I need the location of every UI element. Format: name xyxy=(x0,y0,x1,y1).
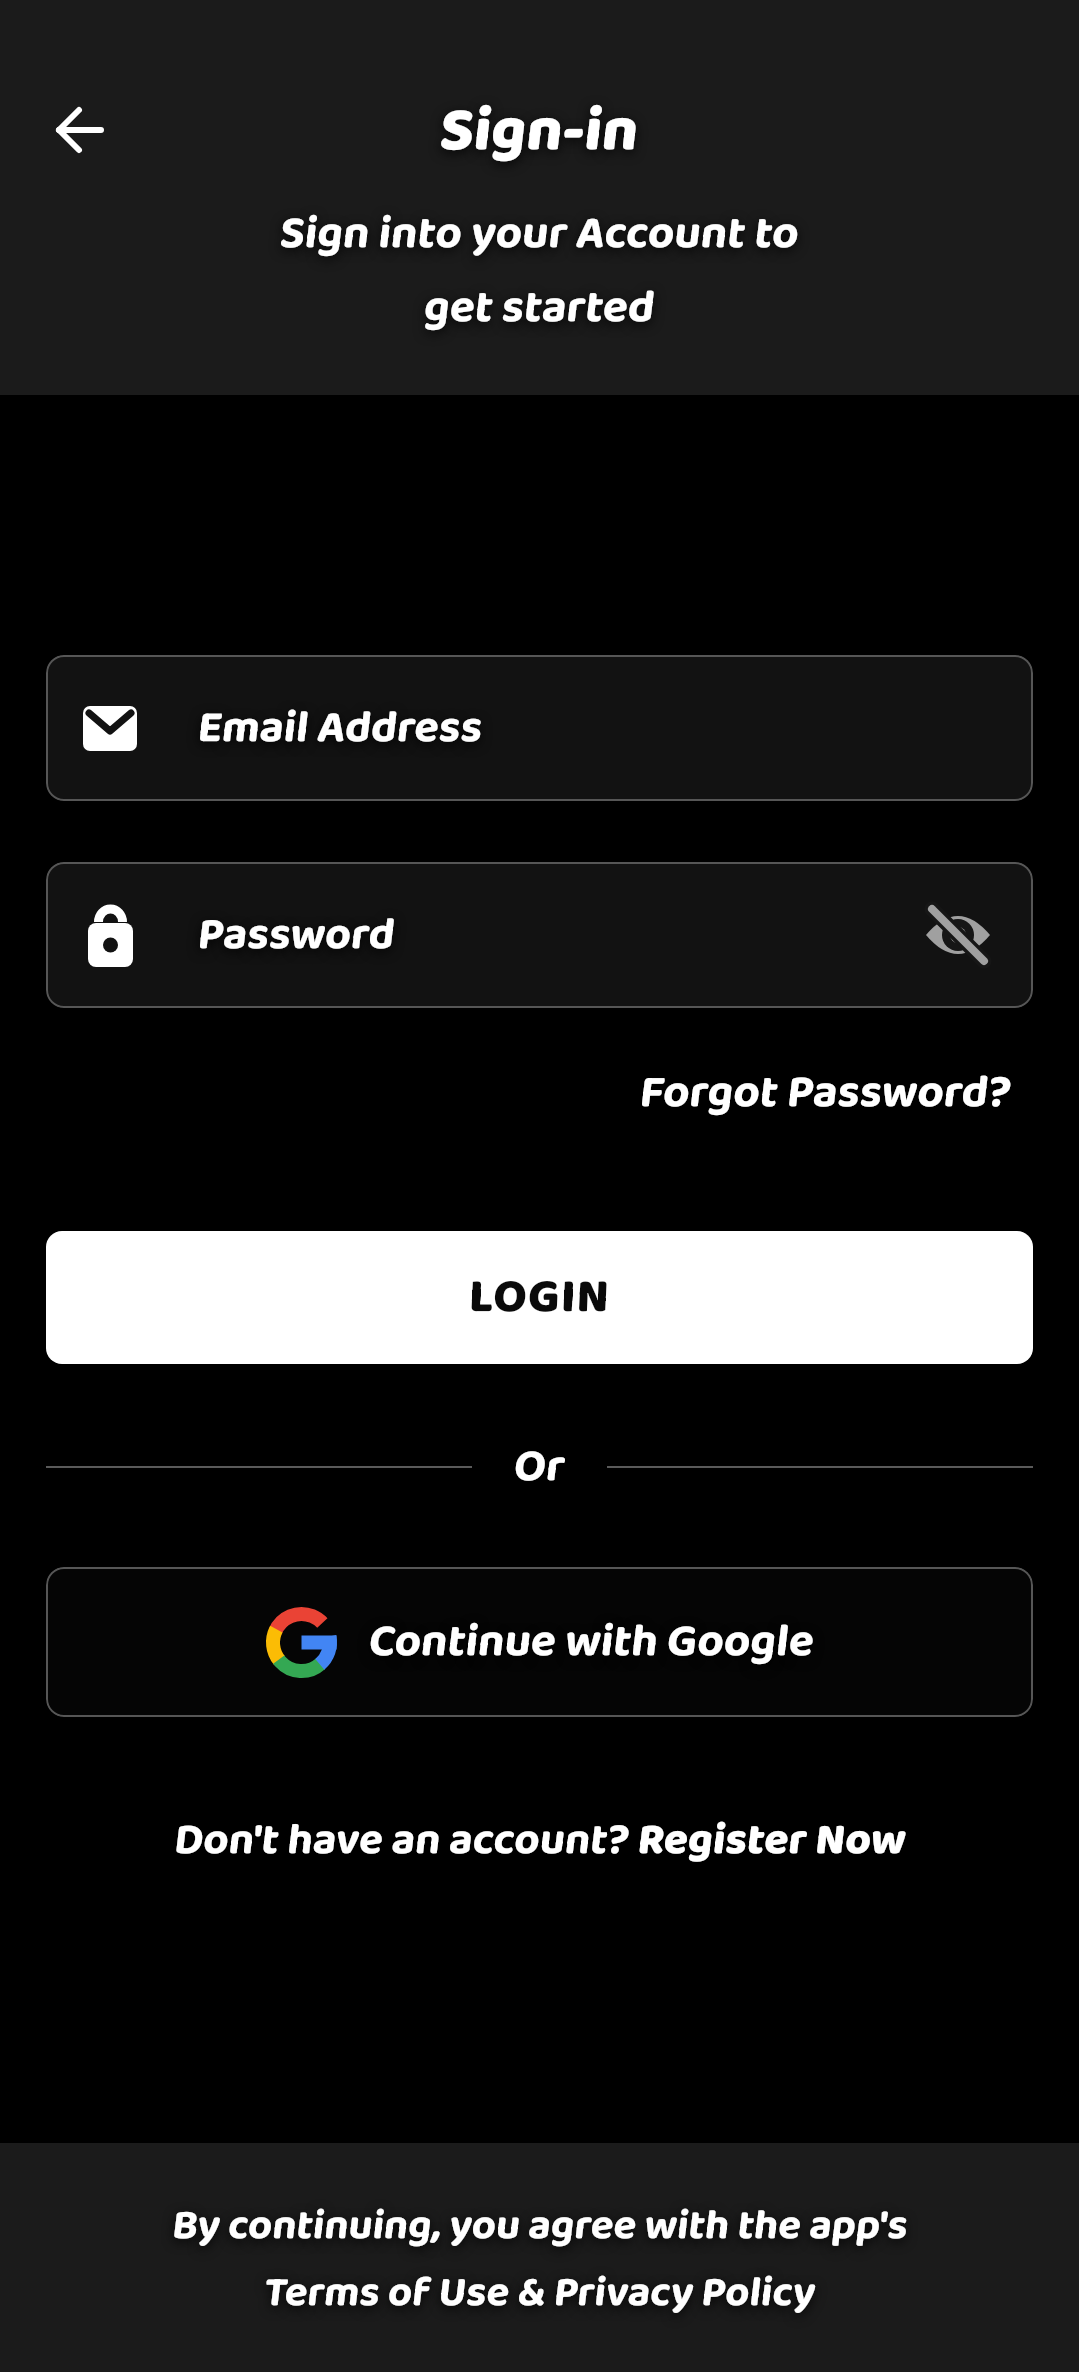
staticText: Password xyxy=(198,899,395,971)
staticText: Sign into your Account to xyxy=(280,197,799,271)
button[interactable] xyxy=(40,92,116,168)
button[interactable]: LOGIN xyxy=(46,1231,1033,1364)
button[interactable] xyxy=(913,890,1003,980)
staticText: Sign-in xyxy=(440,77,639,187)
staticText: Don't have an account? Register Now xyxy=(174,1802,906,1880)
button[interactable]: Continue with Google xyxy=(46,1567,1033,1717)
staticText: By continuing, you agree with the app's xyxy=(172,2193,908,2260)
staticText: LOGIN xyxy=(469,1255,611,1340)
staticText: Email Address xyxy=(198,692,483,764)
button[interactable]: Don't have an account? Register Now xyxy=(46,1802,1033,1880)
button[interactable]: Password xyxy=(46,862,1033,1008)
staticText: get started xyxy=(424,271,655,345)
staticText: Continue with Google xyxy=(369,1605,814,1679)
button[interactable]: Forgot Password? xyxy=(640,1056,1033,1130)
button[interactable]: By continuing, you agree with the app's xyxy=(0,2143,1079,2372)
staticText: Terms of Use & Privacy Policy xyxy=(264,2260,816,2327)
button[interactable]: Email Address xyxy=(46,655,1033,801)
staticText: Or xyxy=(514,1430,565,1504)
